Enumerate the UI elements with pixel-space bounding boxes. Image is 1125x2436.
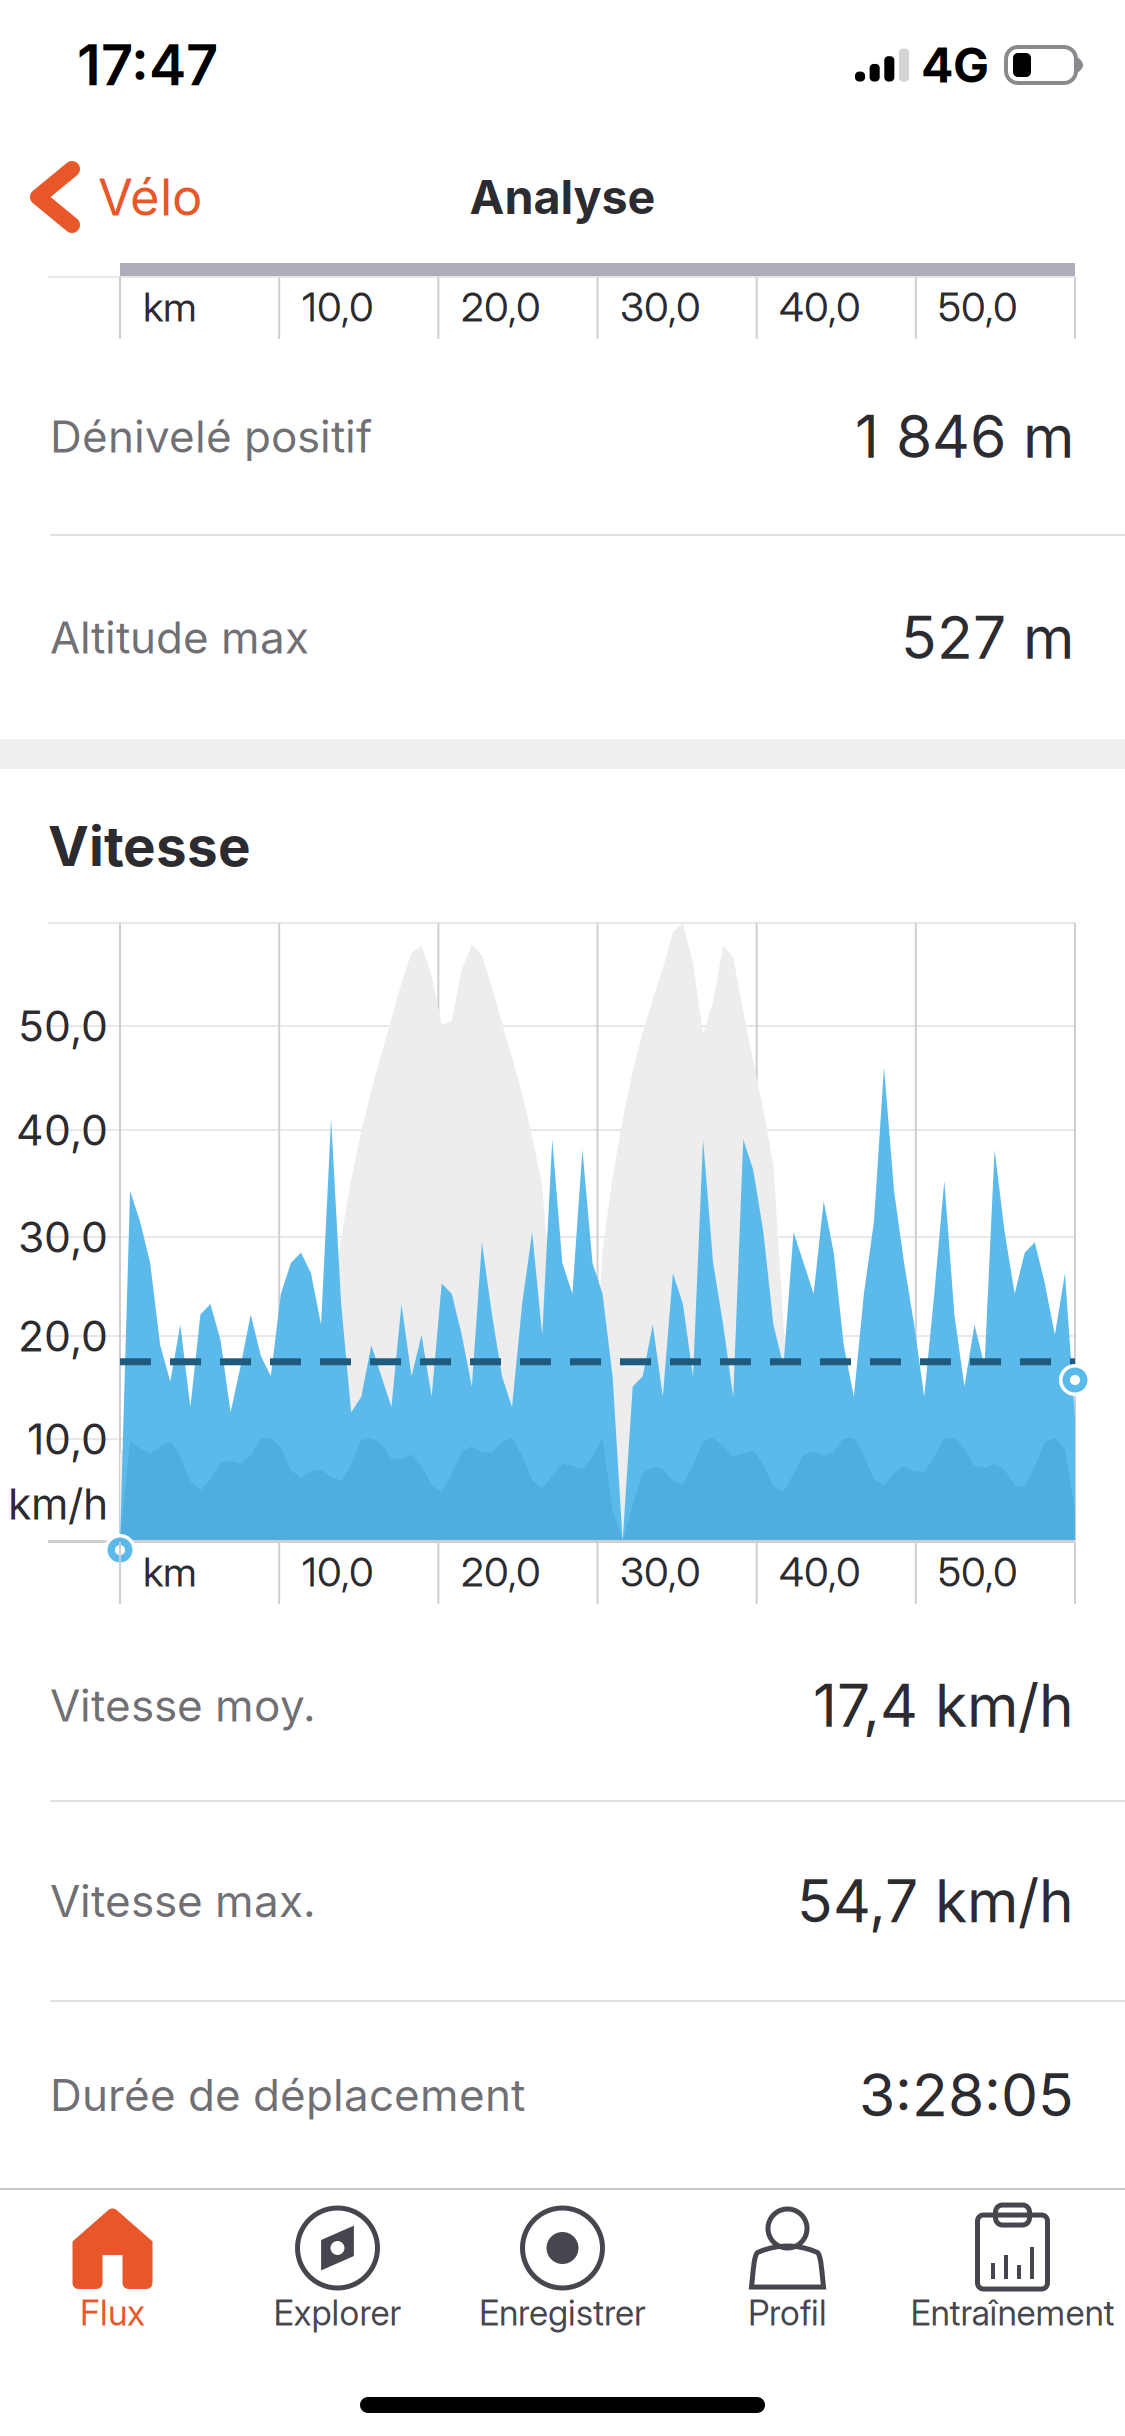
staticText: 30,0: [620, 1548, 701, 1596]
staticText: 20,0: [461, 1548, 541, 1596]
staticText: 30,0: [620, 283, 701, 331]
staticText: 54,7 km/h: [797, 1865, 1074, 1936]
staticText: Analyse: [469, 169, 655, 225]
staticText: Dénivelé positif: [50, 410, 372, 463]
staticText: 40,0: [779, 1548, 861, 1596]
button[interactable]: Altitude max: [0, 536, 1125, 739]
staticText: 3:28:05: [859, 2059, 1074, 2130]
staticText: 10,0: [27, 1413, 108, 1465]
button[interactable]: Durée de déplacement: [0, 2002, 1125, 2188]
staticText: Profil: [748, 2292, 827, 2334]
staticText: km: [143, 283, 197, 331]
staticText: 10,0: [302, 283, 374, 331]
staticText: 50,0: [18, 1000, 108, 1052]
staticText: Vélo: [98, 166, 202, 228]
staticText: Entraînement: [910, 2292, 1114, 2334]
staticText: 20,0: [461, 283, 541, 331]
button[interactable]: Explorer: [225, 2197, 450, 2333]
staticText: Durée de déplacement: [50, 2068, 525, 2122]
staticText: Explorer: [273, 2292, 401, 2334]
staticText: 527 m: [901, 602, 1074, 673]
button[interactable]: Profil: [675, 2197, 900, 2333]
staticText: 50,0: [938, 283, 1018, 331]
staticText: km: [143, 1548, 197, 1596]
button[interactable]: Vitesse max.: [0, 1802, 1125, 2000]
staticText: 17:47: [77, 31, 218, 99]
staticText: 30,0: [18, 1211, 108, 1263]
button[interactable]: Dénivelé positif: [0, 339, 1125, 534]
staticText: Vitesse: [48, 813, 251, 879]
staticText: 1 846 m: [855, 401, 1074, 472]
staticText: Vitesse moy.: [50, 1679, 316, 1732]
staticText: 50,0: [938, 1548, 1018, 1596]
staticText: Vitesse max.: [50, 1874, 316, 1928]
staticText: 40,0: [16, 1104, 108, 1156]
staticText: Enregistrer: [479, 2292, 646, 2334]
staticText: 17,4 km/h: [813, 1670, 1074, 1741]
staticText: 4G: [921, 36, 989, 94]
staticText: 10,0: [302, 1548, 374, 1596]
staticText: Flux: [80, 2292, 145, 2334]
button[interactable]: Flux: [0, 2197, 225, 2333]
staticText: km/h: [8, 1478, 108, 1530]
button[interactable]: Enregistrer: [450, 2197, 675, 2333]
button[interactable]: Entraînement: [900, 2197, 1125, 2333]
staticText: 20,0: [18, 1310, 108, 1362]
button[interactable]: Vitesse moy.: [0, 1611, 1125, 1800]
staticText: Altitude max: [50, 611, 309, 664]
staticText: 40,0: [779, 283, 861, 331]
button[interactable]: Vélo: [0, 131, 226, 263]
